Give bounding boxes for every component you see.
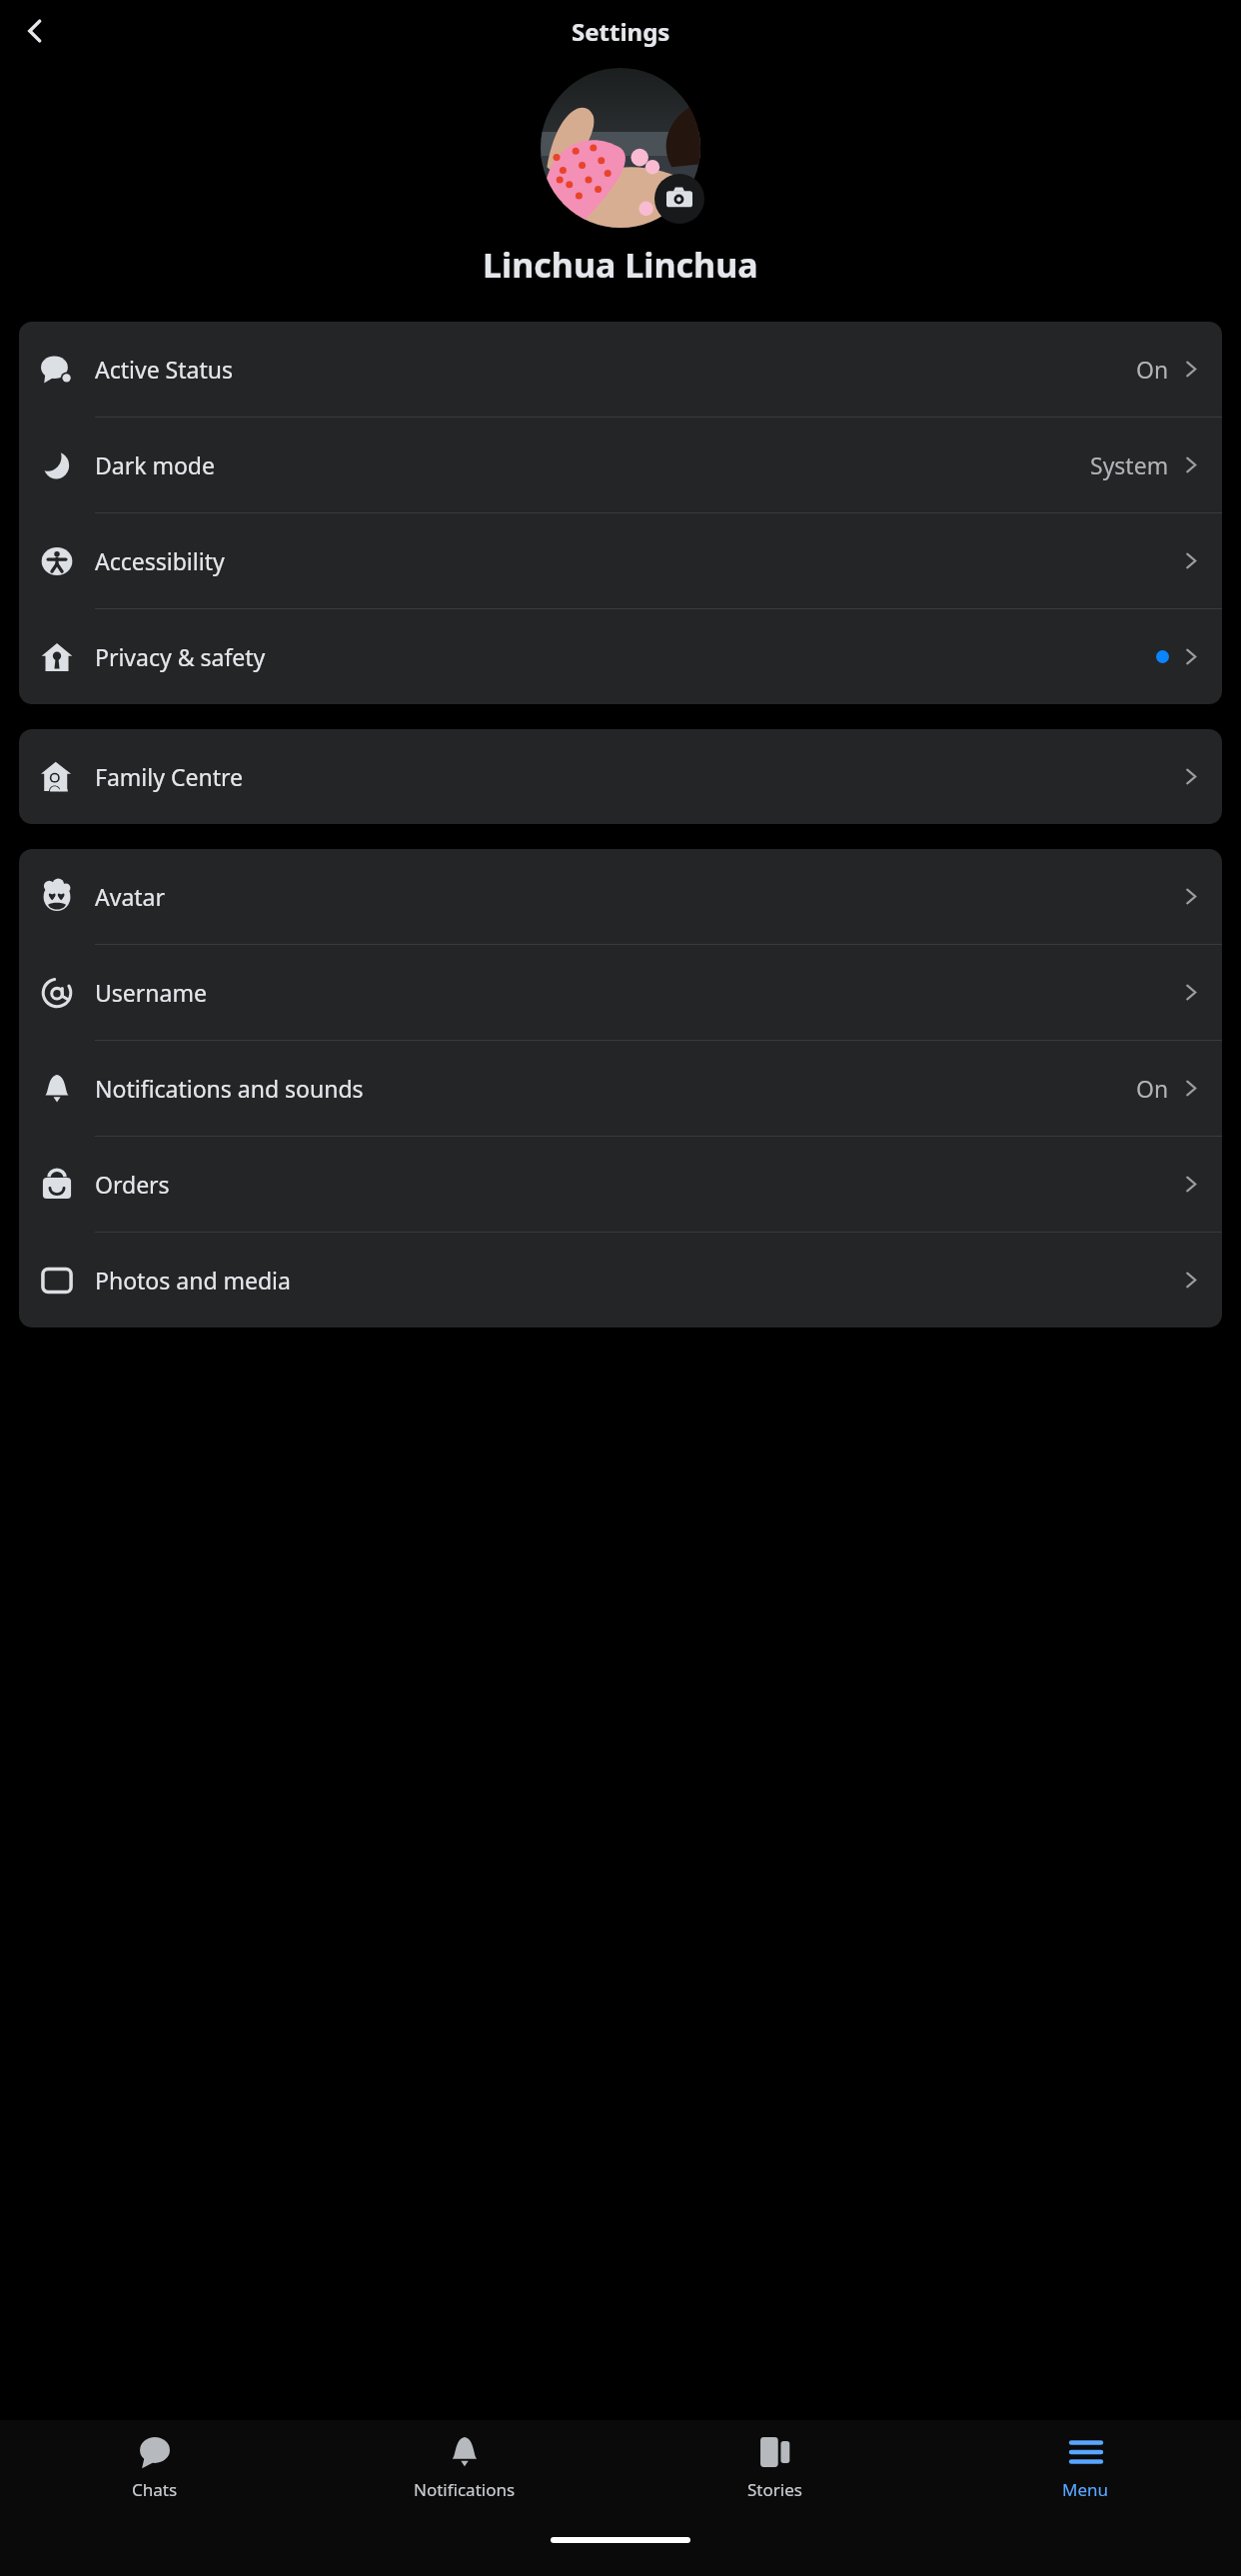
button[interactable]: Avatar: [19, 849, 1222, 945]
button[interactable]: Username: [19, 945, 1222, 1041]
staticText: Notifications and sounds: [95, 1073, 364, 1104]
staticText: Active Status: [95, 354, 233, 385]
staticText: On: [1136, 1073, 1169, 1104]
button[interactable]: Notifications: [310, 2420, 620, 2516]
button[interactable]: Back: [8, 4, 62, 58]
staticText: Chats: [132, 2478, 178, 2501]
staticText: Menu: [1062, 2478, 1109, 2501]
button[interactable]: Active Status: [19, 322, 1222, 418]
staticText: Family Centre: [95, 761, 243, 792]
staticText: Linchua Linchua: [483, 242, 758, 288]
staticText: Settings: [572, 15, 670, 48]
button[interactable]: Menu: [930, 2420, 1241, 2516]
staticText: Avatar: [95, 881, 165, 912]
staticText: Notifications: [414, 2478, 516, 2501]
staticText: Privacy & safety: [95, 641, 266, 672]
button[interactable]: Privacy & safety: [19, 609, 1222, 704]
button[interactable]: Photos and media: [19, 1233, 1222, 1327]
staticText: System: [1090, 449, 1169, 480]
staticText: Orders: [95, 1169, 170, 1200]
button[interactable]: Chats: [0, 2420, 310, 2516]
button[interactable]: Family Centre: [19, 729, 1222, 824]
staticText: On: [1136, 354, 1169, 385]
staticText: Photos and media: [95, 1265, 291, 1295]
staticText: Accessibility: [95, 545, 225, 576]
button[interactable]: Dark mode: [19, 418, 1222, 513]
button[interactable]: Notifications and sounds: [19, 1041, 1222, 1137]
button[interactable]: Accessibility: [19, 513, 1222, 609]
button[interactable]: Stories: [620, 2420, 930, 2516]
staticText: Stories: [747, 2478, 802, 2501]
staticText: Dark mode: [95, 449, 215, 480]
staticText: Username: [95, 977, 207, 1008]
button[interactable]: Orders: [19, 1137, 1222, 1233]
button[interactable]: Change profile photo: [654, 174, 704, 224]
